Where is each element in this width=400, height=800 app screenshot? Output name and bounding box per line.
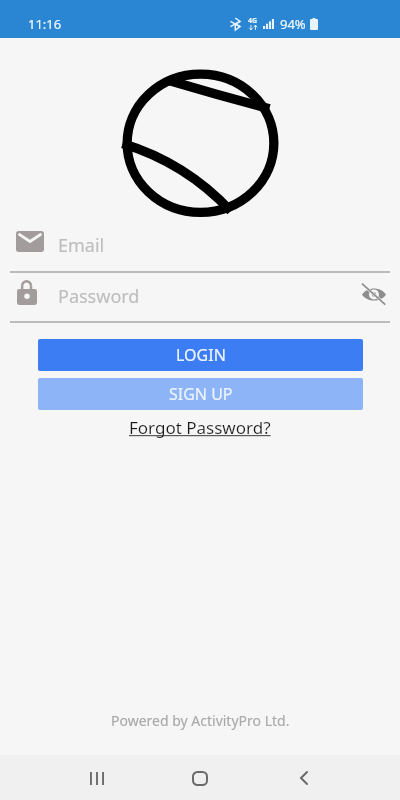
button[interactable]: LOGIN	[38, 339, 363, 371]
staticText: Email	[58, 233, 105, 258]
button[interactable]: Forgot Password?	[123, 414, 277, 441]
button[interactable]: Back	[277, 758, 331, 798]
staticText: Password	[58, 284, 140, 309]
button[interactable]: Password	[0, 274, 400, 323]
staticText: 94%	[280, 15, 306, 33]
staticText: Powered by ActivityPro Ltd.	[111, 711, 290, 730]
button[interactable]: Home	[173, 758, 227, 798]
button[interactable]: Recents	[70, 758, 124, 798]
staticText: 4G	[248, 16, 258, 26]
staticText: SIGN UP	[169, 383, 233, 405]
button[interactable]: SIGN UP	[38, 378, 363, 410]
button[interactable]: Show password	[360, 283, 388, 305]
staticText: LOGIN	[176, 344, 226, 366]
button[interactable]: Email	[0, 224, 400, 273]
staticText: 11:16	[28, 15, 62, 33]
